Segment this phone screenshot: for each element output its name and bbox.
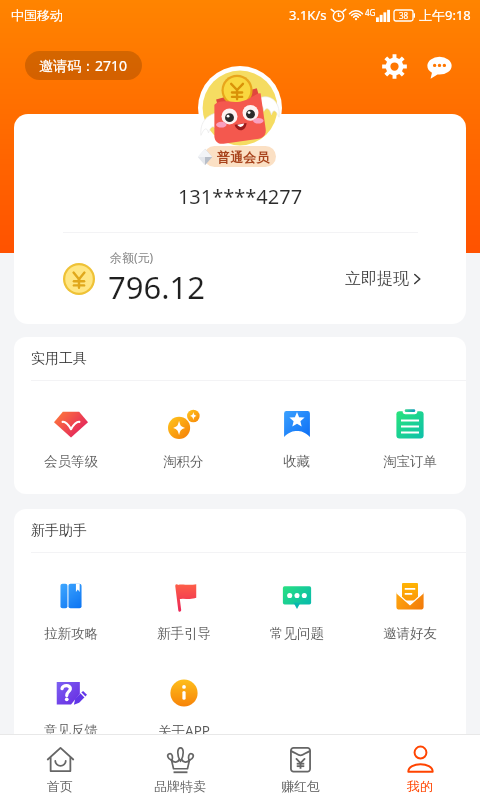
button[interactable]: 我的 [360,735,480,800]
staticText: 131****4277 [14,183,466,210]
staticText: 余额(元) [110,249,154,265]
button[interactable]: 会员等级 [14,381,127,494]
staticText: 新手引导 [157,625,211,642]
staticText: 中国移动 [11,7,63,23]
button[interactable]: 关于APP [127,650,240,747]
staticText: 关于APP [158,722,210,740]
staticText: 品牌特卖 [154,778,206,794]
button[interactable]: 淘宝订单 [353,381,466,494]
staticText: 上午9:18 [419,6,471,24]
staticText: 拉新攻略 [44,625,98,642]
staticText: 收藏 [283,453,310,470]
button[interactable]: 品牌特卖 [120,735,240,800]
button[interactable]: 赚红包 [240,735,360,800]
button[interactable]: 邀请码：2710 [25,51,142,80]
staticText: 4G [365,7,376,18]
staticText: 实用工具 [31,350,87,368]
staticText: 立即提现 [345,269,409,289]
staticText: 首页 [47,778,73,794]
button[interactable]: 拉新攻略 [14,553,127,650]
button[interactable]: 邀请好友 [353,553,466,650]
button[interactable]: 新手引导 [127,553,240,650]
button[interactable]: 收藏 [240,381,353,494]
staticText: 赚红包 [281,778,320,794]
button[interactable]: 常见问题 [240,553,353,650]
button[interactable] [204,146,276,167]
button[interactable]: Settings [376,48,412,84]
staticText: 淘宝订单 [383,453,437,470]
staticText: 意见反馈 [44,722,98,739]
staticText: 常见问题 [270,625,324,642]
button[interactable]: 淘积分 [127,381,240,494]
button[interactable]: Messages [421,48,457,84]
staticText: 会员等级 [44,453,98,470]
button[interactable]: 立即提现 [345,261,424,297]
staticText: 796.12 [108,266,205,308]
staticText: 淘积分 [163,453,204,470]
staticText: 3.1K/s [289,6,327,24]
staticText: 38 [399,10,409,21]
staticText: 我的 [407,778,433,794]
button[interactable]: 意见反馈 [14,650,127,747]
staticText: 邀请好友 [383,625,437,642]
button[interactable]: 首页 [0,735,120,800]
staticText: 邀请码：2710 [39,56,128,75]
staticText: 普通会员 [217,149,269,165]
staticText: 新手助手 [31,522,87,540]
